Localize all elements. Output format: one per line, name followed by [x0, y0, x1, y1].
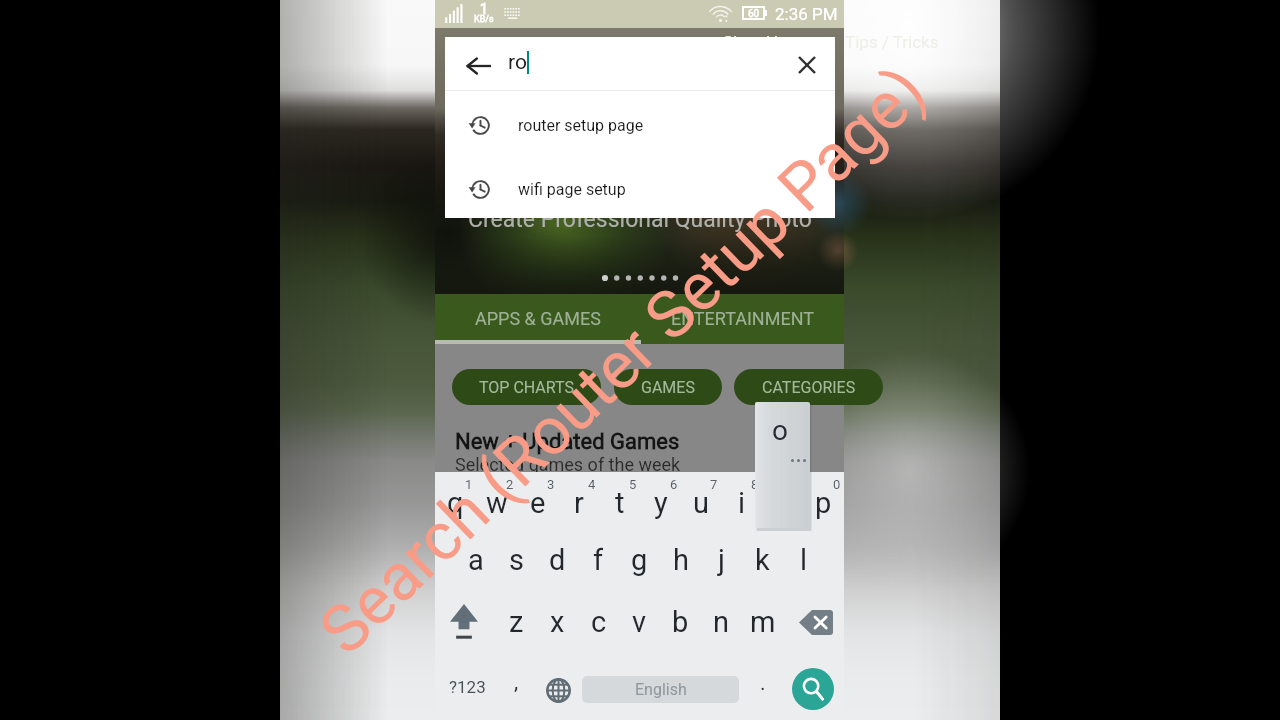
button[interactable]: Change language	[536, 662, 580, 719]
staticText: p	[815, 486, 832, 520]
staticText: b	[672, 605, 689, 639]
staticText: c	[591, 605, 607, 639]
staticText: f	[593, 543, 604, 577]
button[interactable]: 7	[680, 472, 721, 529]
button[interactable]: Clear query	[783, 41, 831, 89]
button[interactable]: CATEGORIES	[734, 369, 883, 405]
button[interactable]: 6	[640, 472, 681, 529]
staticText: w	[486, 486, 508, 520]
staticText: x	[550, 605, 565, 639]
button[interactable]: 2	[476, 472, 517, 529]
button[interactable]: English	[582, 676, 739, 703]
button[interactable]: v	[619, 591, 660, 653]
staticText: Selected games of the week	[455, 454, 681, 475]
staticText: 2:36 PM	[775, 4, 838, 24]
button[interactable]: d	[537, 529, 578, 591]
button[interactable]: ?123	[439, 658, 495, 716]
staticText: 6	[670, 477, 678, 492]
staticText: wifi page setup	[518, 180, 626, 199]
staticText: CATEGORIES	[762, 378, 856, 397]
button[interactable]: TOP CHARTS	[452, 369, 601, 405]
staticText: y	[654, 486, 668, 520]
button[interactable]: x	[537, 591, 578, 653]
button[interactable]: router setup page	[445, 93, 835, 157]
button[interactable]: c	[578, 591, 619, 653]
staticText: 8	[751, 477, 759, 492]
staticText: o	[772, 414, 788, 447]
staticText: n	[713, 605, 730, 639]
staticText: English	[635, 680, 687, 699]
staticText: ENTERTAINMENT	[671, 308, 814, 329]
staticText: 7	[710, 477, 718, 492]
button[interactable]: .	[740, 658, 786, 716]
button[interactable]: wifi page setup	[445, 157, 835, 221]
staticText: q	[447, 486, 464, 520]
staticText: k	[755, 543, 770, 577]
staticText: a	[468, 543, 484, 577]
staticText: Search (Router Setup Page)	[305, 51, 941, 670]
staticText: 0	[833, 477, 841, 492]
staticText: u	[693, 486, 709, 520]
staticText: v	[632, 605, 647, 639]
button[interactable]: GAMES	[614, 369, 722, 405]
button[interactable]: s	[496, 529, 537, 591]
staticText: Create Professional Quality Photo	[468, 206, 812, 233]
button[interactable]: ,	[495, 658, 537, 716]
staticText: New + Updated Games	[455, 429, 680, 455]
staticText: s	[509, 543, 524, 577]
button[interactable]: z	[496, 591, 537, 653]
staticText: 3	[547, 477, 555, 492]
button[interactable]: k	[742, 529, 783, 591]
staticText: i	[738, 486, 746, 520]
staticText: t	[615, 486, 625, 520]
button[interactable]: m	[742, 591, 783, 653]
staticText: l	[800, 543, 808, 577]
staticText: r	[574, 486, 584, 520]
staticText: KB/s	[474, 14, 494, 25]
button[interactable]: 0	[803, 472, 844, 529]
button[interactable]: l	[783, 529, 824, 591]
button[interactable]: a	[455, 529, 496, 591]
staticText: 1	[480, 1, 488, 17]
staticText: APPS & GAMES	[475, 308, 601, 329]
button[interactable]: Shift	[435, 591, 492, 653]
button[interactable]: 4	[558, 472, 599, 529]
staticText: ro	[508, 50, 527, 75]
staticText: 4	[588, 477, 596, 492]
staticText: g	[631, 543, 648, 577]
button[interactable]: b	[660, 591, 701, 653]
button[interactable]: 3	[517, 472, 558, 529]
staticText: 60	[748, 8, 760, 18]
button[interactable]: j	[701, 529, 742, 591]
button[interactable]: Search	[792, 668, 834, 710]
staticText: 5	[629, 477, 637, 492]
staticText: router setup page	[518, 116, 644, 135]
staticText: z	[509, 605, 524, 639]
staticText: e	[530, 486, 546, 520]
button[interactable]: 9	[762, 472, 803, 529]
staticText: ?123	[449, 677, 486, 697]
button[interactable]: Backspace	[787, 591, 844, 653]
button[interactable]: 5	[599, 472, 640, 529]
staticText: TOP CHARTS	[479, 378, 574, 397]
button[interactable]: 8	[721, 472, 762, 529]
button[interactable]: Back	[455, 42, 503, 90]
button[interactable]: g	[619, 529, 660, 591]
staticText: 1	[465, 477, 473, 492]
staticText: ,	[514, 670, 519, 695]
button[interactable]: f	[578, 529, 619, 591]
staticText: m	[750, 605, 776, 639]
staticText: Shop Home Tips / Tricks	[723, 32, 939, 52]
button[interactable]: 1	[435, 472, 476, 529]
staticText: 2	[506, 477, 514, 492]
staticText: j	[718, 543, 725, 577]
button[interactable]: h	[660, 529, 701, 591]
staticText: h	[673, 543, 689, 577]
staticText: d	[549, 543, 566, 577]
staticText: .	[760, 671, 766, 696]
button[interactable]: n	[701, 591, 742, 653]
staticText: GAMES	[641, 378, 695, 397]
